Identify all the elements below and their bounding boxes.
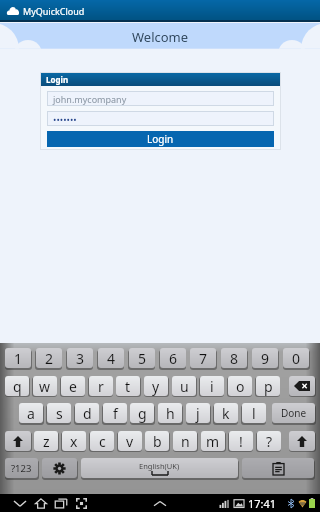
- staticText: 8: [230, 349, 239, 368]
- button[interactable]: Backspace: [289, 376, 315, 396]
- button[interactable]: •••••••: [47, 111, 274, 126]
- staticText: h: [166, 404, 175, 423]
- staticText: e: [69, 377, 77, 396]
- button[interactable]: g: [130, 403, 154, 423]
- staticText: ?: [266, 432, 273, 451]
- staticText: b: [153, 432, 162, 451]
- staticText: u: [180, 377, 189, 396]
- button[interactable]: y: [144, 376, 168, 396]
- button[interactable]: 5: [129, 348, 155, 368]
- button[interactable]: u: [172, 376, 196, 396]
- staticText: 7: [199, 349, 208, 368]
- staticText: t: [125, 377, 131, 396]
- staticText: g: [138, 404, 147, 423]
- staticText: Done: [281, 406, 307, 420]
- other: Back: [14, 500, 26, 507]
- button[interactable]: p: [256, 376, 280, 396]
- button[interactable]: john.mycompany: [47, 91, 274, 106]
- staticText: r: [98, 377, 104, 396]
- button[interactable]: Back: [11, 494, 29, 512]
- button[interactable]: 2: [36, 348, 62, 368]
- staticText: q: [13, 377, 22, 396]
- staticText: m: [206, 432, 220, 451]
- button[interactable]: 8: [221, 348, 247, 368]
- other: Recent apps: [55, 498, 67, 509]
- button[interactable]: 1: [5, 348, 31, 368]
- staticText: •••••••: [53, 113, 77, 125]
- staticText: c: [99, 432, 106, 451]
- other: Clipboard: [242, 458, 314, 478]
- button[interactable]: c: [90, 431, 114, 451]
- button[interactable]: Login: [47, 131, 274, 147]
- staticText: 0: [292, 349, 301, 368]
- staticText: f: [113, 404, 118, 423]
- other: Settings: [42, 458, 77, 478]
- button[interactable]: ?123: [5, 458, 38, 478]
- staticText: john.mycompany: [53, 93, 127, 105]
- button[interactable]: 4: [98, 348, 124, 368]
- button[interactable]: Shift: [289, 431, 315, 451]
- button[interactable]: i: [200, 376, 224, 396]
- staticText: ?123: [11, 462, 32, 475]
- staticText: Login: [147, 132, 174, 146]
- button[interactable]: Hide keyboard: [151, 494, 169, 512]
- staticText: i: [210, 377, 214, 396]
- button[interactable]: w: [33, 376, 57, 396]
- button[interactable]: 6: [160, 348, 186, 368]
- button[interactable]: m: [201, 431, 225, 451]
- button[interactable]: 0: [283, 348, 309, 368]
- button[interactable]: Shift: [5, 431, 31, 451]
- button[interactable]: Home: [32, 494, 50, 512]
- staticText: o: [236, 377, 245, 396]
- button[interactable]: English(UK): [81, 458, 238, 478]
- staticText: 9: [261, 349, 270, 368]
- other: Shift: [5, 431, 31, 451]
- other: Hide keyboard: [154, 501, 166, 506]
- button[interactable]: f: [103, 403, 127, 423]
- button[interactable]: l: [242, 403, 266, 423]
- button[interactable]: v: [118, 431, 142, 451]
- button[interactable]: Clipboard: [242, 458, 314, 478]
- other: Screenshot: [76, 498, 87, 509]
- staticText: 5: [138, 349, 147, 368]
- staticText: d: [83, 404, 92, 423]
- other: Backspace: [289, 376, 315, 396]
- other: Home: [35, 498, 47, 509]
- button[interactable]: s: [47, 403, 71, 423]
- button[interactable]: x: [62, 431, 86, 451]
- button[interactable]: Done: [272, 403, 315, 423]
- button[interactable]: b: [145, 431, 169, 451]
- button[interactable]: !: [229, 431, 253, 451]
- button[interactable]: 7: [190, 348, 216, 368]
- staticText: a: [27, 404, 35, 423]
- button[interactable]: a: [19, 403, 43, 423]
- staticText: 3: [76, 349, 85, 368]
- button[interactable]: j: [186, 403, 210, 423]
- staticText: 4: [107, 349, 116, 368]
- button[interactable]: ?: [257, 431, 281, 451]
- button[interactable]: q: [5, 376, 29, 396]
- button[interactable]: Screenshot: [72, 494, 90, 512]
- staticText: k: [222, 404, 230, 423]
- button[interactable]: e: [61, 376, 85, 396]
- button[interactable]: n: [173, 431, 197, 451]
- button[interactable]: k: [214, 403, 238, 423]
- button[interactable]: r: [89, 376, 113, 396]
- staticText: 17:41: [248, 496, 277, 511]
- button[interactable]: Recent apps: [52, 494, 70, 512]
- button[interactable]: 3: [67, 348, 93, 368]
- staticText: 2: [45, 349, 54, 368]
- staticText: 1: [14, 349, 23, 368]
- staticText: MyQuickCloud: [23, 5, 85, 17]
- button[interactable]: t: [116, 376, 140, 396]
- staticText: 6: [169, 349, 178, 368]
- staticText: l: [252, 404, 256, 423]
- button[interactable]: o: [228, 376, 252, 396]
- button[interactable]: 9: [252, 348, 278, 368]
- button[interactable]: h: [158, 403, 182, 423]
- staticText: Login: [46, 74, 69, 85]
- button[interactable]: d: [75, 403, 99, 423]
- button[interactable]: Settings: [42, 458, 77, 478]
- staticText: v: [126, 432, 134, 451]
- button[interactable]: z: [34, 431, 58, 451]
